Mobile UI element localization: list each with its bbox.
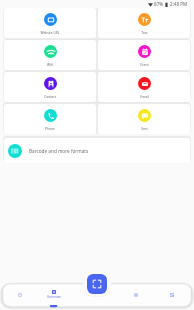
staticText: 2:48 PM [170,1,188,7]
staticText: Sms [141,127,148,131]
staticText: Email [140,95,149,99]
staticText: Website URL [40,31,60,35]
staticText: Phone [45,127,55,131]
staticText: Generate [47,295,61,299]
button[interactable]: Wifi [4,40,96,70]
button[interactable]: Event [98,40,190,70]
button[interactable]: Contact [4,72,96,102]
staticText: Barcode and more formats [29,148,89,154]
staticText: Wifi [47,63,53,67]
staticText: Text [141,31,148,35]
button[interactable]: Barcode and more formats [4,138,190,163]
button[interactable]: Text [98,8,190,38]
staticText: 87% [154,1,164,7]
staticText: Event [140,63,149,67]
button[interactable]: Website URL [4,8,96,38]
button[interactable]: Scan code [87,274,107,294]
button[interactable]: generate [37,284,71,306]
button[interactable]: settings [118,284,153,306]
staticText: Contact [44,95,56,99]
button[interactable]: Phone [4,104,96,134]
button[interactable]: Email [98,72,190,102]
button[interactable]: Sms [98,104,190,134]
button[interactable]: history [3,284,37,306]
button[interactable]: grid [153,284,190,306]
